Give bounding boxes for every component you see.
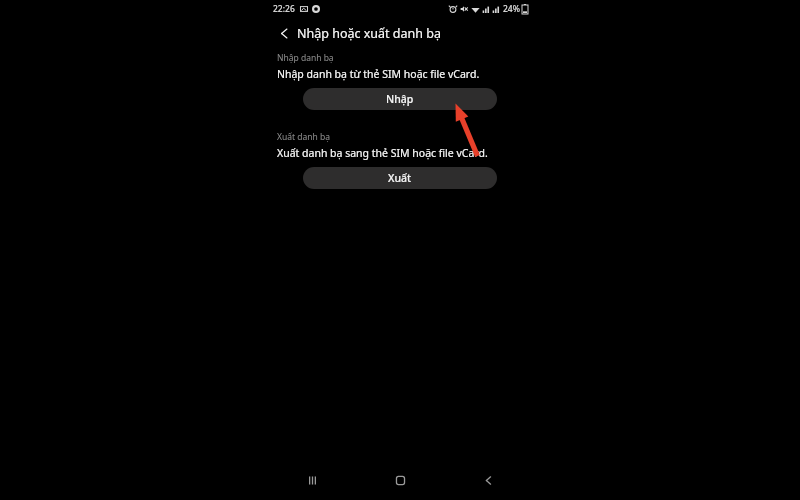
button[interactable]: Home — [356, 464, 444, 500]
staticText: Xuất danh bạ — [277, 131, 330, 143]
staticText: Xuất — [388, 171, 412, 185]
button[interactable]: Xuất — [303, 167, 497, 189]
staticText: Nhập danh bạ — [277, 52, 334, 64]
button[interactable]: Back — [273, 22, 295, 44]
staticText: 24% — [503, 3, 520, 15]
staticText: Nhập danh bạ từ thẻ SIM hoặc file vCard. — [277, 67, 480, 81]
staticText: Nhập — [386, 92, 414, 106]
staticText: Xuất danh bạ sang thẻ SIM hoặc file vCar… — [277, 146, 488, 160]
staticText: 22:26 — [273, 3, 295, 15]
button[interactable]: Back — [444, 464, 532, 500]
button[interactable]: Nhập — [303, 88, 497, 110]
button[interactable]: Recents — [268, 464, 356, 500]
staticText: Nhập hoặc xuất danh bạ — [297, 25, 441, 42]
